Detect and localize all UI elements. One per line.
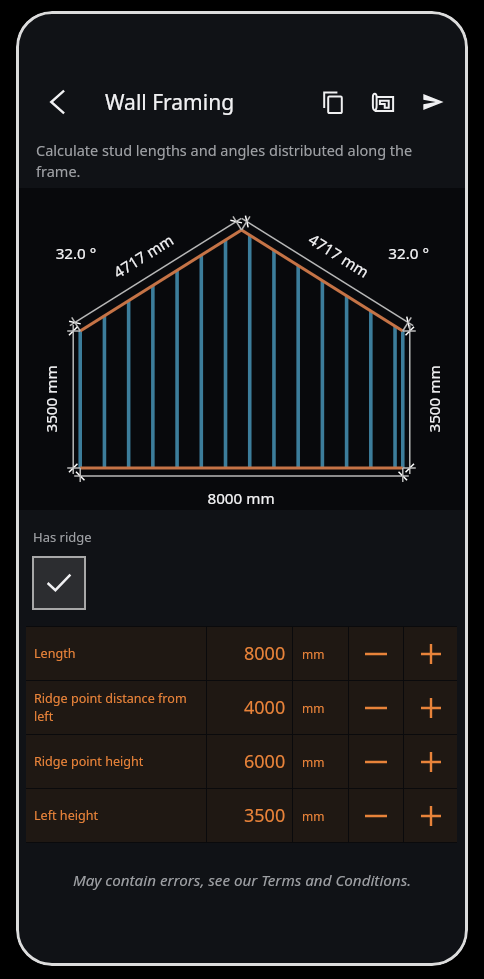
- staticText: Left height: [34, 807, 99, 824]
- button[interactable]: Copy: [312, 81, 354, 123]
- button[interactable]: Has ridge: [32, 556, 86, 610]
- button[interactable]: Increase: [404, 681, 457, 734]
- button[interactable]: Decrease: [349, 681, 403, 734]
- staticText: 8000: [244, 641, 286, 666]
- staticText: Calculate stud lengths and angles distri…: [36, 140, 420, 182]
- staticText: Ridge point distance from left: [34, 690, 200, 725]
- button[interactable]: Decrease: [349, 789, 403, 842]
- staticText: Ridge point height: [34, 753, 144, 770]
- button[interactable]: Increase: [404, 735, 457, 788]
- staticText: Has ridge: [33, 528, 92, 546]
- button[interactable]: Send: [412, 81, 454, 123]
- button[interactable]: Blueprint: [362, 81, 404, 123]
- staticText: mm: [302, 754, 325, 770]
- staticText: 4000: [244, 695, 286, 720]
- staticText: mm: [302, 646, 325, 662]
- button[interactable]: Decrease: [349, 735, 403, 788]
- staticText: mm: [302, 808, 325, 824]
- staticText: Wall Framing: [105, 88, 235, 117]
- staticText: May contain errors, see our Terms and Co…: [16, 870, 468, 891]
- button[interactable]: Back: [38, 82, 78, 122]
- button[interactable]: Increase: [404, 627, 457, 680]
- staticText: 6000: [244, 749, 286, 774]
- button[interactable]: Increase: [404, 789, 457, 842]
- staticText: 3500: [244, 803, 286, 828]
- staticText: mm: [302, 700, 325, 716]
- button[interactable]: Decrease: [349, 627, 403, 680]
- staticText: Length: [34, 645, 76, 662]
